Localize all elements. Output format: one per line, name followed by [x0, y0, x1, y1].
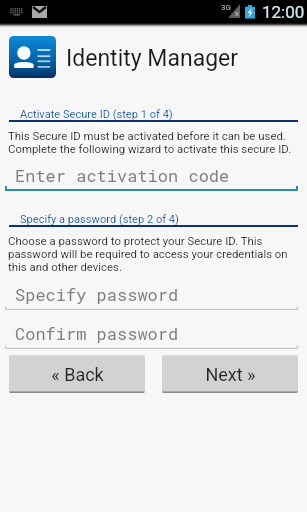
staticText: Activate Secure ID (step 1 of 4)	[20, 108, 307, 121]
button[interactable]: Next »	[162, 355, 298, 393]
staticText: Identity Manager	[66, 45, 239, 72]
staticText: Complete the following wizard to activat…	[8, 142, 307, 155]
button[interactable]: Confirm password	[5, 321, 298, 349]
staticText: Specify password	[15, 283, 179, 305]
button[interactable]: Specify password	[5, 282, 298, 310]
staticText: Confirm password	[15, 322, 179, 344]
button[interactable]: Enter activation code	[5, 163, 298, 191]
staticText: 3G	[221, 3, 231, 12]
staticText: Specify a password (step 2 of 4)	[20, 213, 307, 226]
staticText: « Back	[51, 364, 104, 385]
staticText: This Secure ID must be activated before …	[8, 129, 307, 142]
staticText: Next »	[205, 364, 256, 385]
staticText: password will be required to access your…	[8, 247, 307, 260]
staticText: this and other devices.	[8, 260, 307, 273]
button[interactable]: « Back	[9, 355, 145, 393]
staticText: 12:00	[262, 2, 305, 22]
staticText: Enter activation code	[15, 164, 230, 186]
staticText: Choose a password to protect your Secure…	[8, 234, 307, 247]
